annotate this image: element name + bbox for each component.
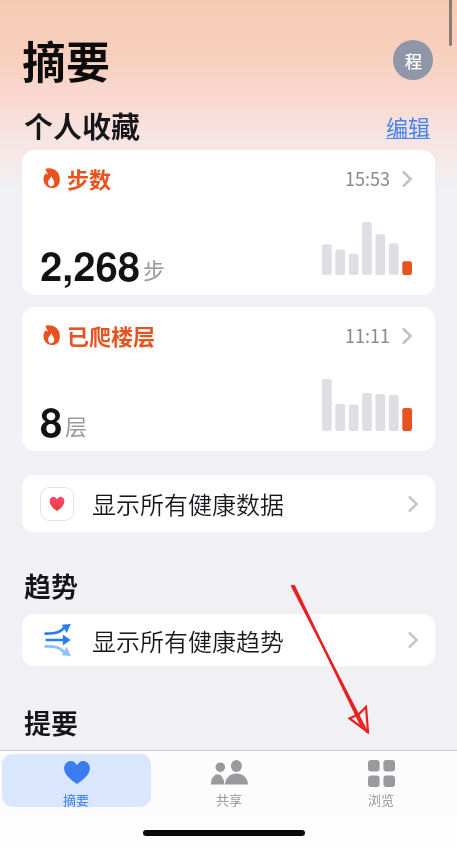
staticText: 摘要: [22, 28, 110, 92]
staticText: 提要: [24, 703, 78, 742]
staticText: 显示所有健康趋势: [92, 623, 284, 658]
staticText: 编辑: [386, 110, 431, 142]
staticText: 步: [143, 253, 166, 285]
staticText: 个人收藏: [24, 104, 141, 146]
staticText: 显示所有健康数据: [92, 486, 284, 521]
staticText: 11:11: [345, 322, 390, 348]
staticText: 15:53: [345, 165, 390, 191]
button[interactable]: 已爬楼层: [22, 307, 435, 451]
button[interactable]: 浏览: [307, 754, 455, 807]
staticText: 浏览: [368, 790, 395, 807]
staticText: 已爬楼层: [67, 319, 156, 351]
button[interactable]: 显示所有健康数据: [22, 475, 435, 532]
button[interactable]: 步数: [22, 150, 435, 295]
button[interactable]: 摘要: [2, 754, 151, 807]
staticText: 摘要: [63, 790, 90, 807]
button[interactable]: 编辑: [386, 110, 431, 142]
staticText: 共享: [216, 790, 243, 807]
staticText: 趋势: [24, 566, 78, 605]
staticText: 8: [40, 392, 63, 449]
staticText: 程: [405, 48, 422, 73]
staticText: 层: [65, 409, 88, 441]
staticText: 步数: [67, 162, 112, 194]
button[interactable]: 显示所有健康趋势: [22, 614, 435, 666]
button[interactable]: 共享: [155, 754, 303, 807]
button[interactable]: Profile: [393, 40, 433, 80]
staticText: 2,268: [40, 236, 141, 293]
